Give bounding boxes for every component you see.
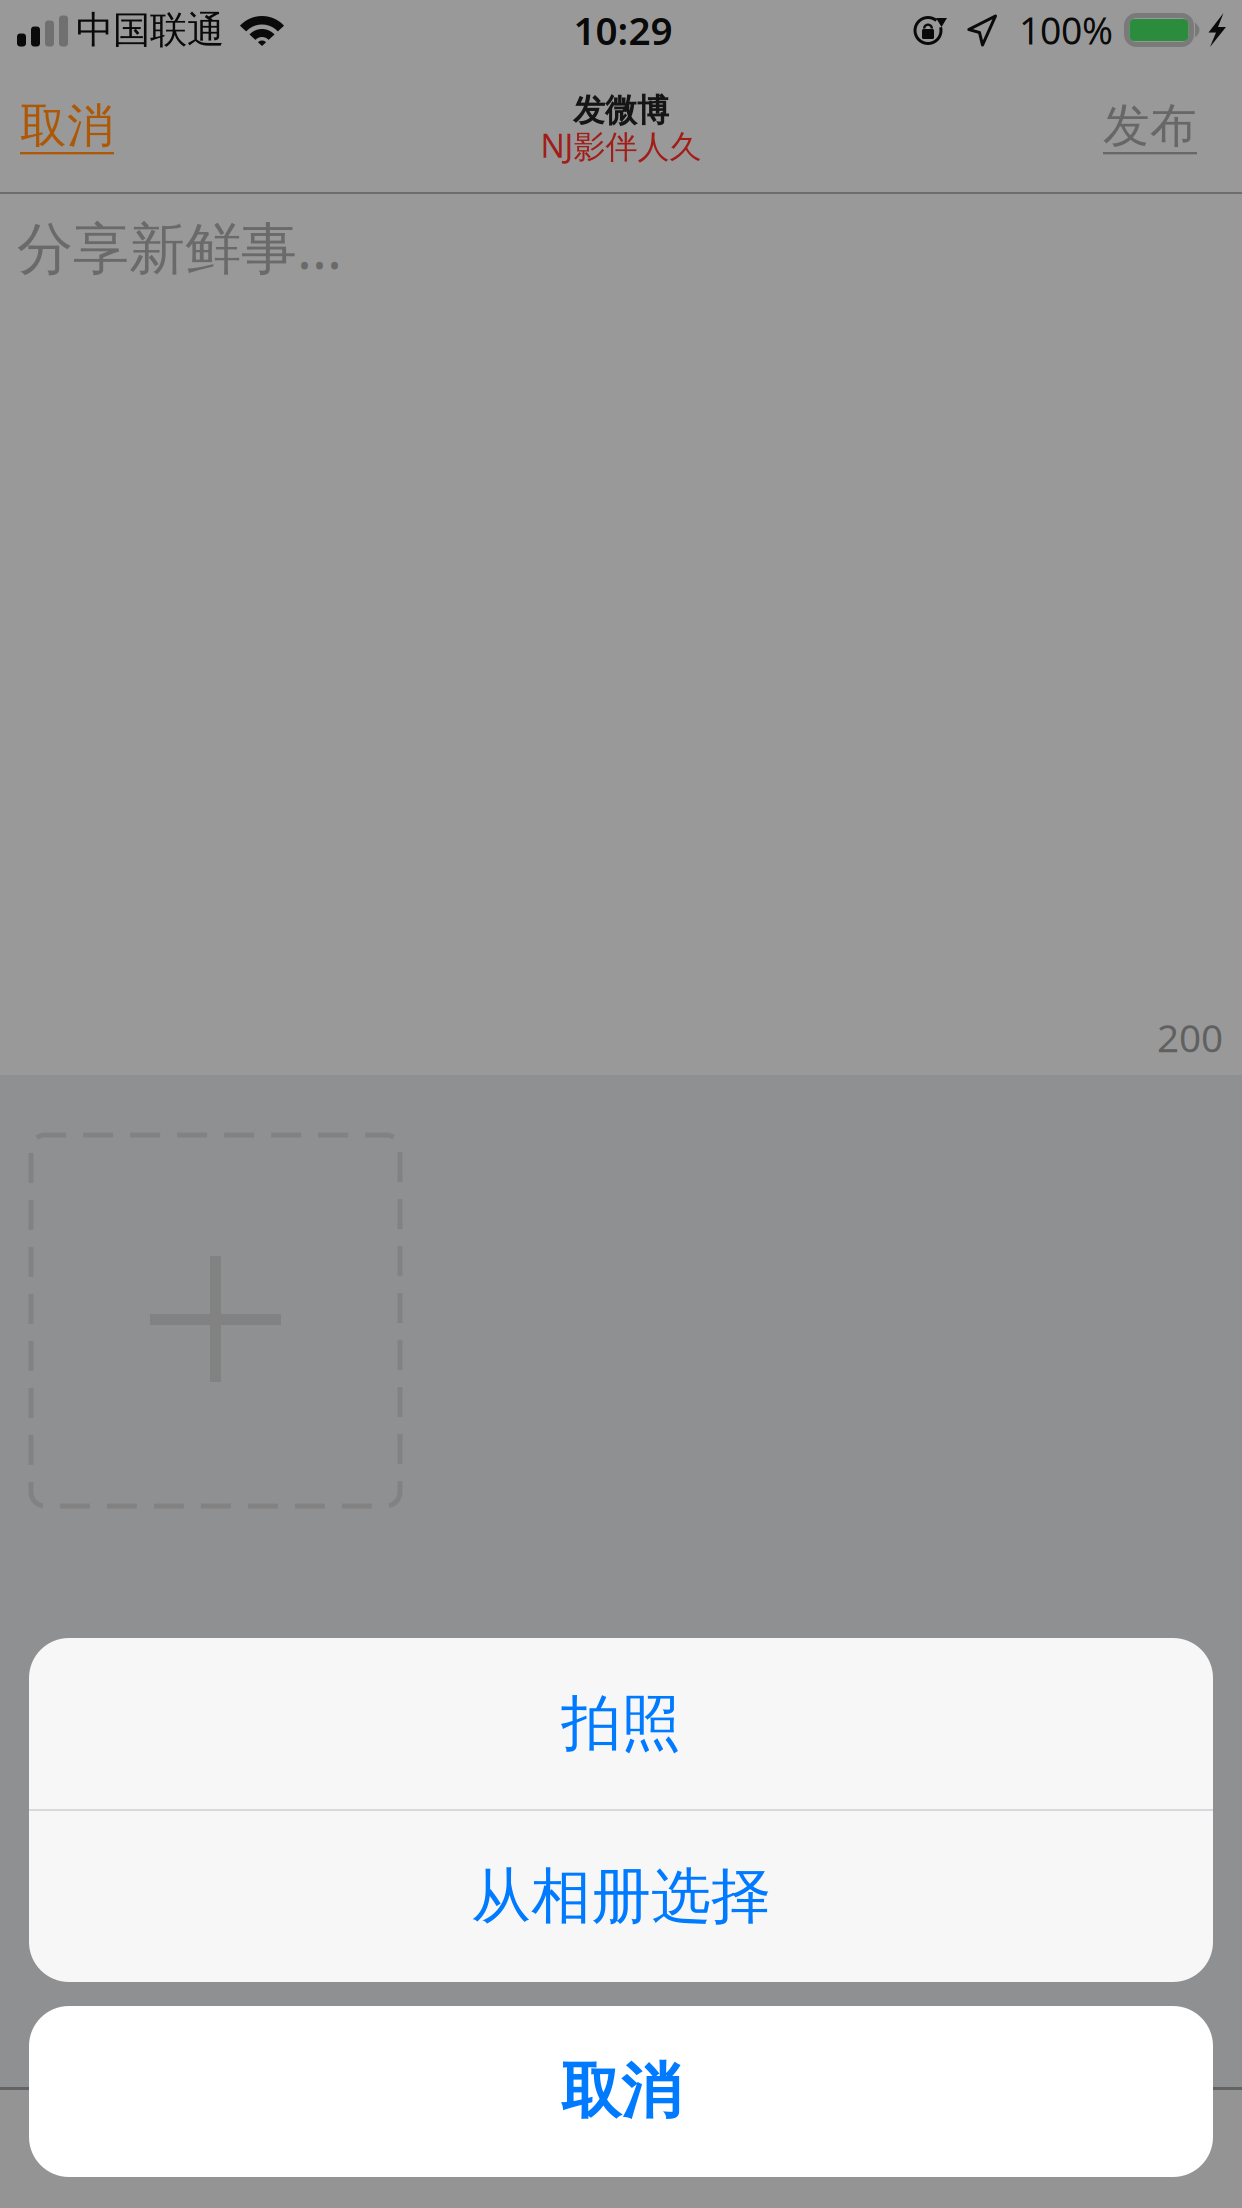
- staticText: 取消: [20, 97, 114, 155]
- staticText: 分享新鲜事...: [17, 210, 342, 284]
- button[interactable]: 取消: [0, 60, 138, 192]
- staticText: 发微博: [573, 91, 669, 130]
- staticText: 从相册选择: [471, 1860, 771, 1933]
- staticText: 发布: [1103, 97, 1197, 155]
- staticText: 200: [1157, 1012, 1223, 1063]
- button[interactable]: 发布: [1079, 60, 1242, 192]
- staticText: 100%: [1019, 5, 1113, 55]
- staticText: 取消: [561, 2055, 681, 2128]
- staticText: 10:29: [573, 4, 672, 56]
- button[interactable]: 取消: [29, 2006, 1213, 2177]
- button[interactable]: 从相册选择: [29, 1811, 1213, 1982]
- staticText: 中国联通: [76, 7, 224, 53]
- staticText: NJ影伴人久: [540, 124, 701, 167]
- staticText: 拍照: [561, 1687, 681, 1760]
- button[interactable]: 拍照: [29, 1638, 1213, 1809]
